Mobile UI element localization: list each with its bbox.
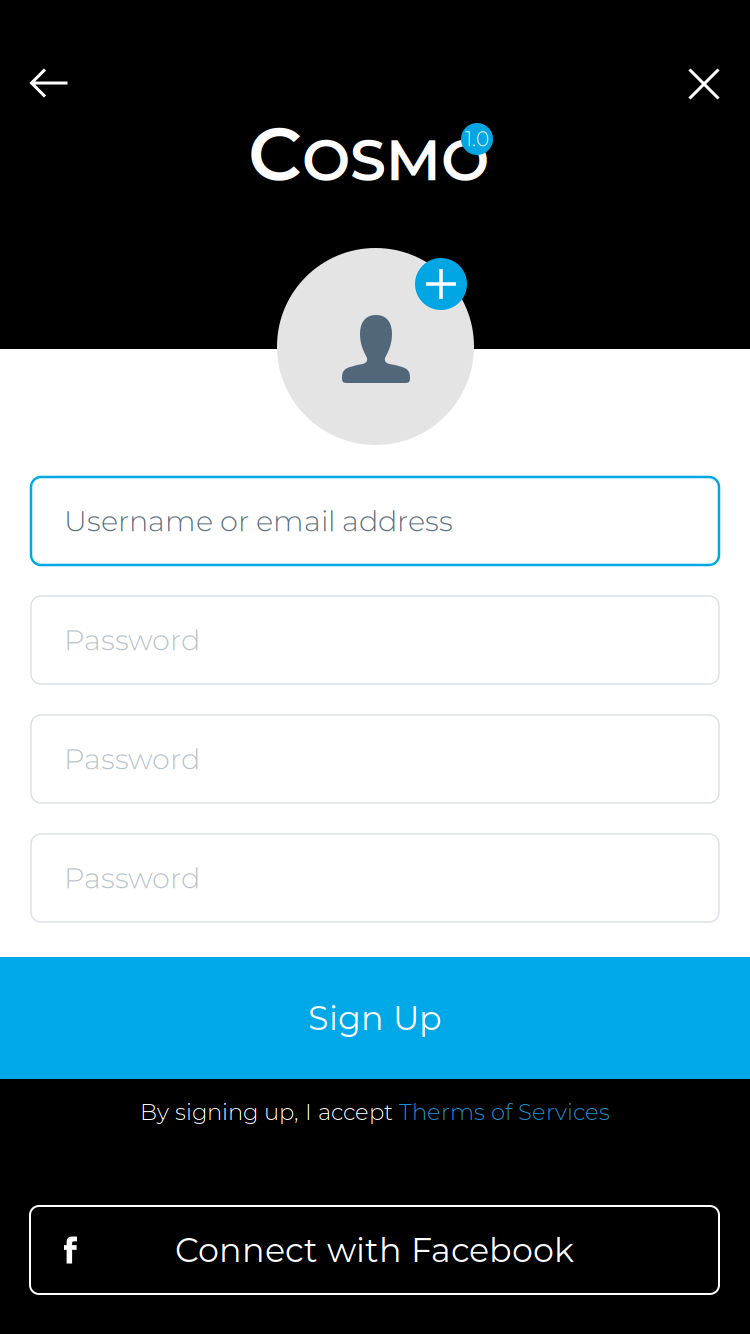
staticText: By signing up, I accept [140, 1098, 399, 1126]
button[interactable]: Close [666, 46, 742, 122]
button[interactable]: Password [31, 715, 719, 803]
button[interactable]: Connect with Facebook [30, 1206, 719, 1294]
staticText: Connect with Facebook [175, 1230, 574, 1270]
staticText: Sign Up [308, 998, 442, 1038]
button[interactable]: Password [31, 596, 719, 684]
staticText: OSMO [302, 125, 489, 195]
staticText: Therms of Services [399, 1098, 610, 1126]
staticText: Password [64, 741, 200, 776]
staticText: C [248, 108, 302, 199]
staticText: Username or email address [64, 503, 453, 538]
staticText: Password [64, 622, 200, 657]
button[interactable]: Sign Up [0, 957, 750, 1079]
button[interactable]: Back [8, 46, 91, 120]
button[interactable]: Username or email address [31, 477, 719, 565]
staticText: 1.0 [465, 127, 489, 151]
button[interactable]: Add photo [415, 258, 467, 310]
button[interactable]: Password [31, 834, 719, 922]
staticText: Password [64, 860, 200, 895]
button[interactable]: Therms of Services [399, 1098, 610, 1126]
